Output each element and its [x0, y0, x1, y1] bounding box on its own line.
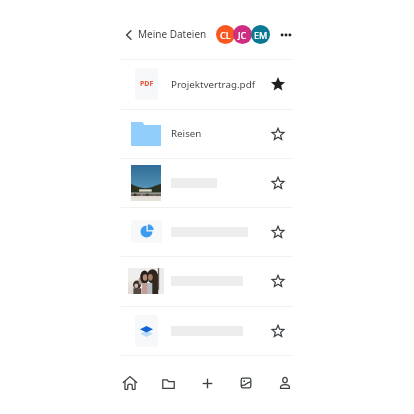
button[interactable]: Files: [151, 356, 185, 412]
button[interactable]: PDF: [121, 59, 293, 109]
button[interactable]: Star: [121, 158, 293, 207]
staticText: EM: [254, 29, 268, 41]
button[interactable]: Star: [121, 256, 293, 306]
button[interactable]: Member JC: [233, 25, 252, 44]
button[interactable]: Reisen: [121, 109, 293, 158]
staticText: Projektvertrag.pdf: [171, 78, 256, 91]
button[interactable]: Home: [113, 356, 147, 412]
staticText: JC: [238, 29, 247, 41]
staticText: CL: [220, 29, 231, 41]
button[interactable]: Photos: [229, 356, 263, 412]
staticText: Reisen: [171, 127, 202, 140]
button[interactable]: Back: [121, 28, 135, 42]
button[interactable]: Add new: [190, 356, 224, 412]
button[interactable]: More options: [278, 27, 294, 43]
button[interactable]: Unstar: [268, 59, 288, 109]
button[interactable]: Star: [268, 306, 288, 355]
button[interactable]: Star: [268, 207, 288, 256]
button[interactable]: Account: [268, 356, 302, 412]
button[interactable]: Member CL: [216, 25, 235, 44]
button[interactable]: Star: [268, 158, 288, 207]
staticText: Meine Dateien: [138, 27, 207, 41]
button[interactable]: Member EM: [251, 25, 270, 44]
button[interactable]: Star: [268, 256, 288, 306]
button[interactable]: Star: [268, 109, 288, 158]
button[interactable]: Star: [121, 207, 293, 256]
staticText: PDF: [140, 79, 154, 89]
button[interactable]: Star: [121, 306, 293, 355]
